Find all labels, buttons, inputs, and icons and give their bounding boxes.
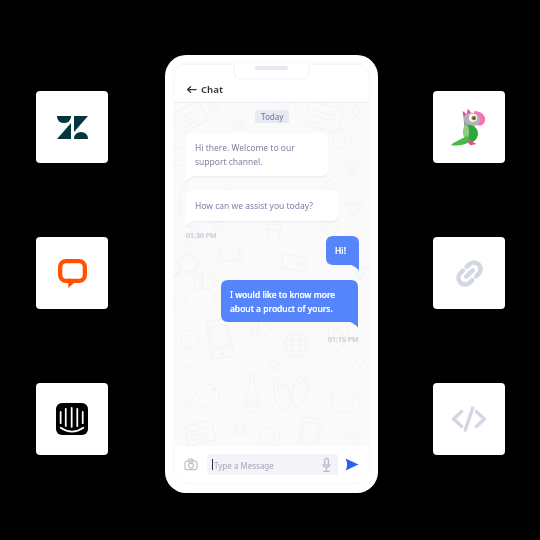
button[interactable]: Send [345,458,359,471]
button[interactable]: Type a Message [207,454,338,475]
button[interactable]: Link [433,237,505,309]
staticText: 01:15 PM [328,335,359,345]
button[interactable]: Parrot [433,91,505,163]
button[interactable]: Intercom [36,383,108,455]
staticText: Chat [201,83,224,96]
button[interactable]: I would like to know more about a produc… [221,280,358,328]
staticText: Type a Message [214,460,274,471]
staticText: Today [261,111,284,122]
button[interactable]: LiveChat [36,237,108,309]
staticText: I would like to know more about a produc… [230,289,336,314]
button[interactable]: Camera [184,458,198,471]
button[interactable]: Zendesk [36,91,108,163]
staticText: How can we assist you today? [195,200,313,212]
staticText: Hi! [335,245,346,257]
button[interactable]: Hi there. Welcome to our support channel… [186,133,328,182]
button[interactable]: Back [186,83,196,96]
button[interactable]: Voice input [321,458,332,472]
button[interactable]: Hi! [326,236,359,271]
staticText: 01:30 PM [186,231,217,241]
button[interactable]: How can we assist you today? [186,190,338,227]
button[interactable]: Code [433,383,505,455]
staticText: Hi there. Welcome to our support channel… [195,142,295,167]
